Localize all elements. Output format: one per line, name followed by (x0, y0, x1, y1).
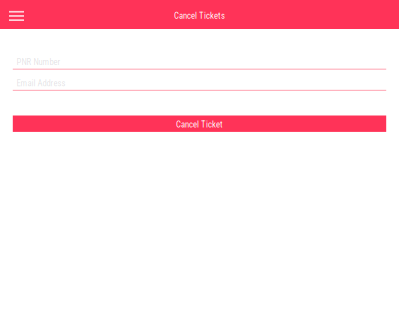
staticText: Cancel Ticket (176, 119, 223, 130)
staticText: Email Address (16, 78, 65, 88)
staticText: Cancel Tickets (174, 11, 225, 21)
button[interactable]: Email Address (13, 77, 386, 91)
button[interactable]: Cancel Ticket (13, 115, 386, 132)
button[interactable]: Menu (9, 0, 24, 29)
staticText: PNR Number (16, 57, 60, 67)
button[interactable]: PNR Number (13, 56, 386, 70)
